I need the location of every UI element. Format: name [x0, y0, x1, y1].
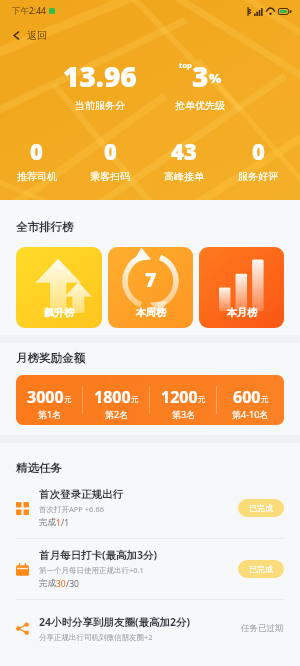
staticText: 已完成 [249, 564, 273, 574]
button[interactable]: 飙升榜 [16, 247, 102, 328]
staticText: 元 [261, 395, 269, 404]
staticText: 元 [131, 395, 139, 404]
staticText: 第4-10名 [232, 408, 269, 420]
staticText: 本周榜 [136, 306, 166, 319]
button[interactable]: 已完成 [238, 499, 284, 517]
staticText: 飙升榜 [44, 306, 74, 319]
staticText: 完成 [39, 578, 56, 589]
staticText: 3 [192, 57, 209, 95]
staticText: 任务已过期 [241, 623, 284, 634]
staticText: 元 [64, 395, 72, 404]
staticText: 首次登录正规出行 [39, 488, 123, 501]
staticText: 第1名 [38, 408, 62, 420]
staticText: 推荐司机 [17, 170, 57, 183]
staticText: 完成 [39, 517, 56, 528]
staticText: 下午2:44 [12, 5, 46, 17]
staticText: 0 [104, 136, 117, 166]
staticText: 43 [171, 136, 197, 166]
staticText: /30 [66, 578, 79, 590]
staticText: 0 [252, 136, 265, 166]
staticText: 高峰接单 [164, 170, 204, 183]
button[interactable]: 24小时分享到朋友圈(最高加2分) [16, 600, 284, 656]
staticText: 全市排行榜 [16, 220, 74, 234]
button[interactable]: 首月每日打卡(最高加3分) [16, 539, 284, 599]
staticText: 精选任务 [16, 461, 62, 475]
staticText: 第2名 [105, 408, 129, 420]
button[interactable]: 返回 [10, 22, 49, 48]
staticText: 首月每日打卡(最高加3分) [39, 548, 158, 562]
staticText: 24小时分享到朋友圈(最高加2分) [39, 615, 191, 629]
staticText: 分享正规出行司机到微信朋友圈+2 [39, 632, 153, 642]
staticText: 本月榜 [227, 306, 257, 319]
staticText: 已完成 [249, 503, 273, 513]
staticText: 返回 [27, 29, 47, 42]
staticText: 抢单优先级 [175, 99, 225, 112]
staticText: top [179, 60, 192, 70]
staticText: 1200 [161, 386, 198, 408]
staticText: 当前服务分 [75, 99, 125, 112]
staticText: 30 [56, 578, 66, 590]
staticText: 首次打开APP +6.66 [39, 504, 104, 514]
button[interactable]: 已完成 [238, 560, 284, 578]
button[interactable]: 本月榜 [199, 247, 284, 328]
staticText: 月榜奖励金额 [16, 351, 85, 365]
staticText: % [209, 69, 222, 87]
staticText: /1 [61, 517, 70, 529]
staticText: 600 [233, 386, 261, 408]
staticText: 服务好评 [238, 170, 278, 183]
staticText: 1800 [94, 386, 131, 408]
staticText: 1 [56, 517, 61, 529]
staticText: 7 [145, 267, 157, 293]
staticText: 3000 [27, 386, 64, 408]
button[interactable]: 首次登录正规出行 [16, 478, 284, 538]
staticText: 元 [198, 395, 206, 404]
button[interactable]: 7 [108, 247, 193, 328]
staticText: 0 [30, 136, 43, 166]
staticText: 13.96 [63, 57, 137, 95]
staticText: 乘客扫码 [90, 170, 130, 183]
staticText: 第3名 [172, 408, 196, 420]
staticText: 第一个月每日使用正规出行+0.1 [39, 565, 144, 575]
